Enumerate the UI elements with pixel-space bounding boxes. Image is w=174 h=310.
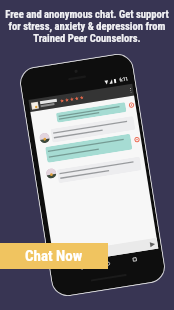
other: Send	[149, 241, 156, 248]
other: More options	[130, 88, 132, 93]
other: Home	[106, 261, 110, 266]
other: Recents	[132, 257, 137, 262]
other: Back	[78, 266, 83, 270]
staticText: Chat Now	[25, 247, 83, 265]
staticText: Free and anonymous chat. Get support for…	[0, 8, 174, 44]
staticText: 6:11	[119, 75, 129, 82]
button[interactable]: Chat Now	[0, 243, 108, 269]
